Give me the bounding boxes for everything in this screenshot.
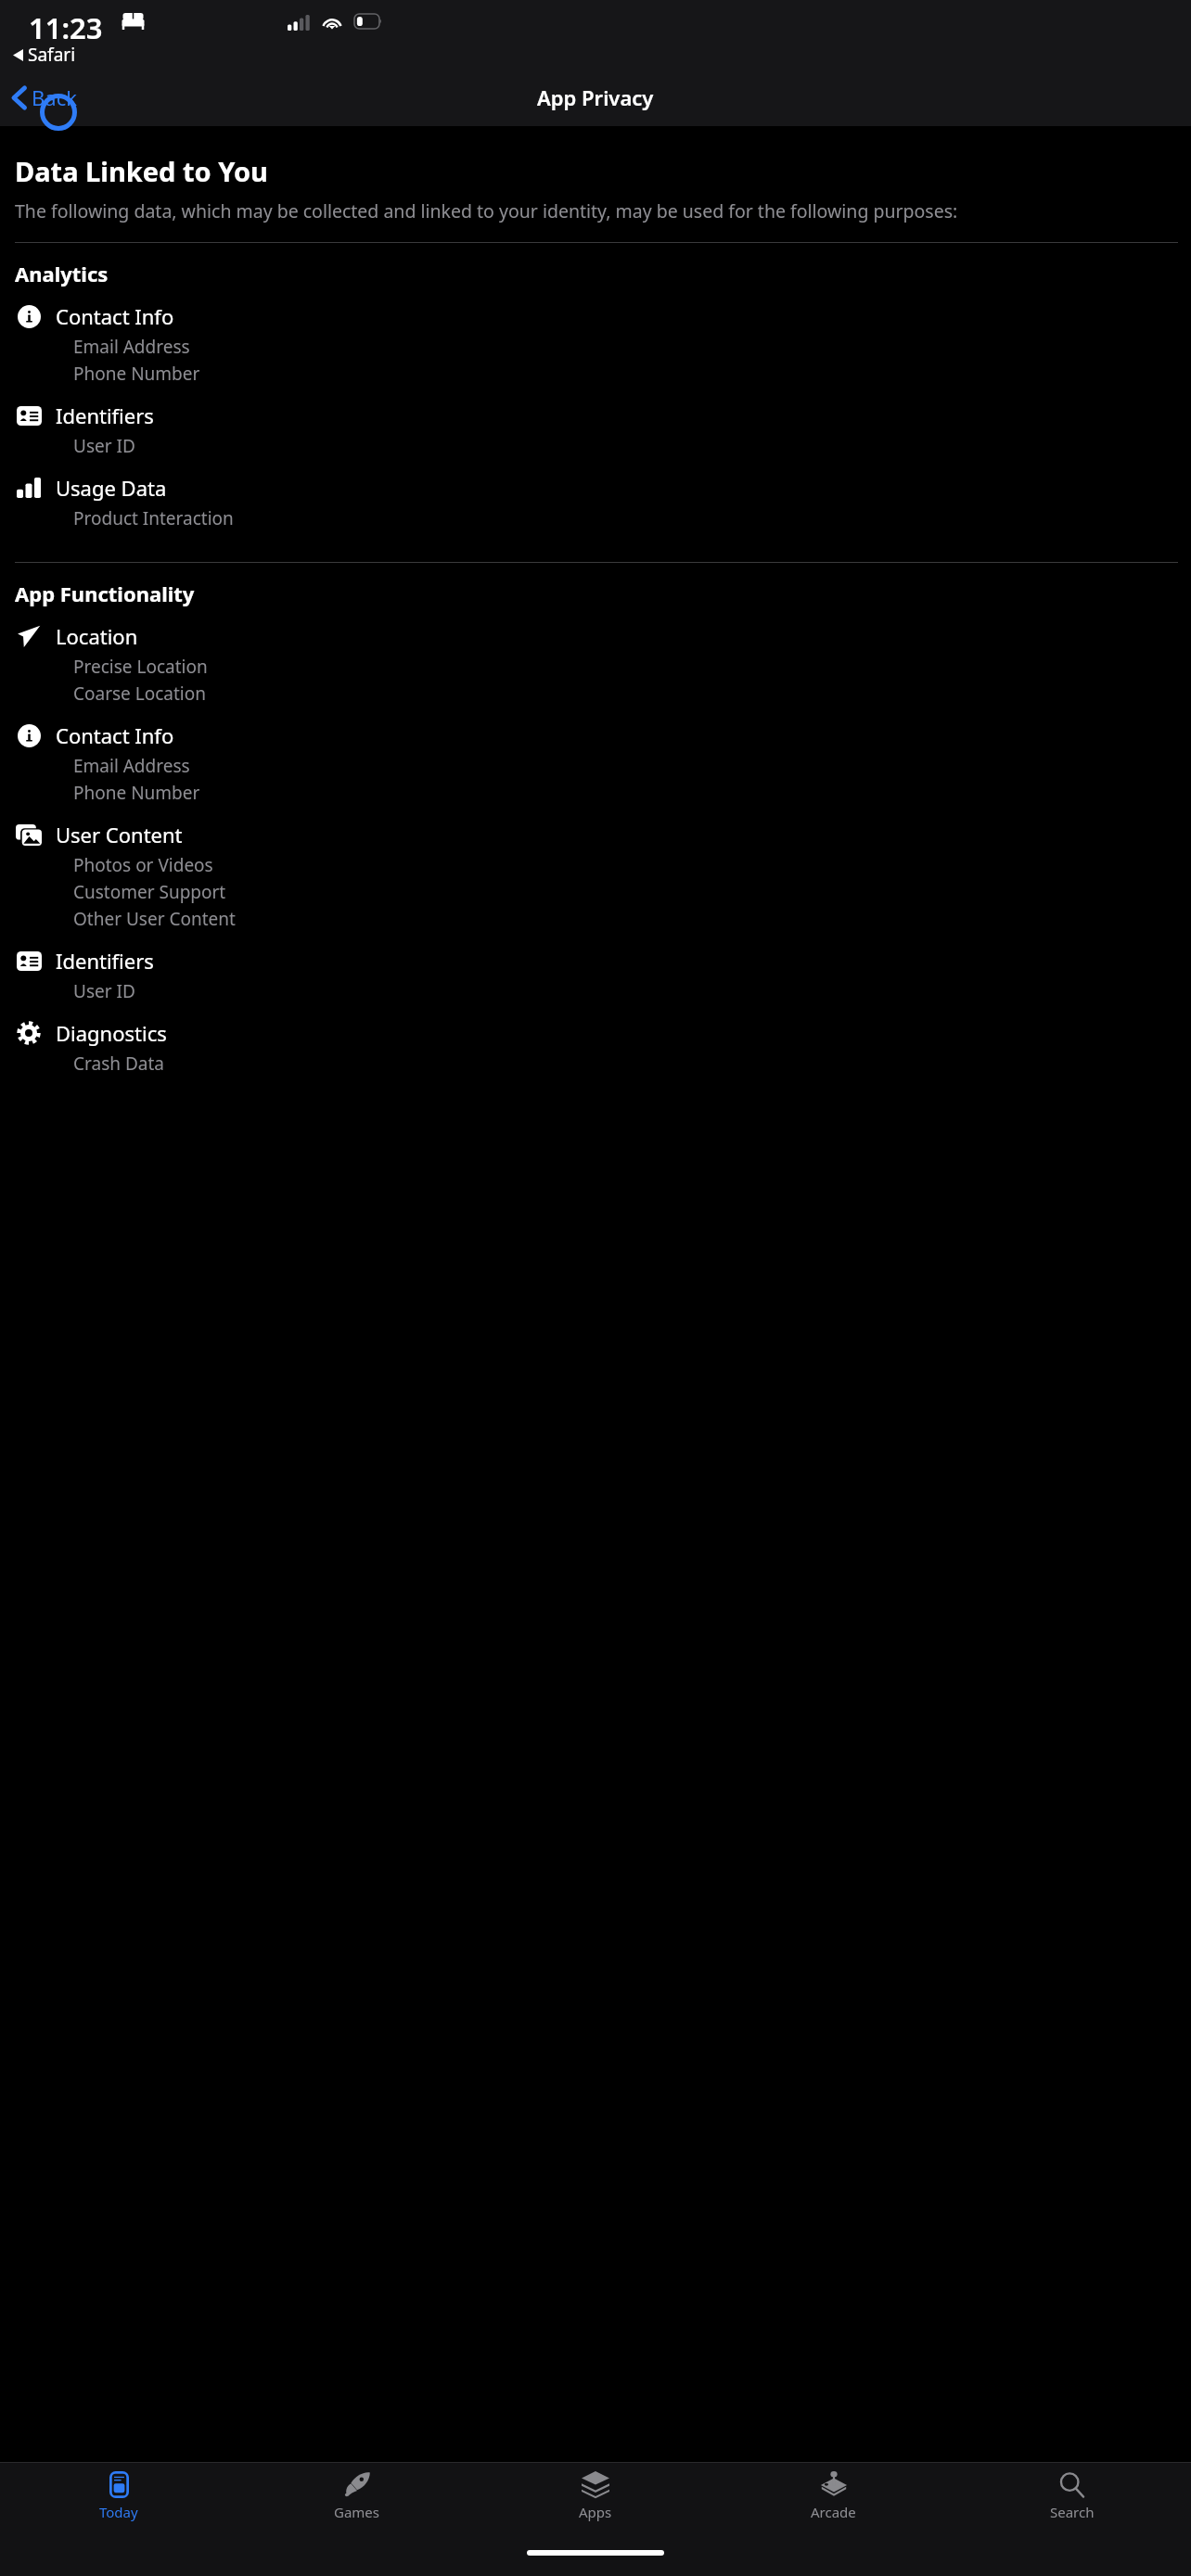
button[interactable]: Today bbox=[0, 2463, 237, 2521]
button[interactable]: User Content bbox=[0, 821, 1191, 947]
staticText: Arcade bbox=[811, 2503, 856, 2521]
button[interactable]: Usage Data bbox=[0, 474, 1191, 546]
button[interactable]: Contact Info bbox=[0, 721, 1191, 821]
button[interactable]: Identifiers bbox=[0, 947, 1191, 1019]
staticText: Back bbox=[32, 83, 77, 111]
staticText: User ID bbox=[73, 979, 135, 1003]
staticText: Crash Data bbox=[73, 1052, 164, 1076]
staticText: Games bbox=[334, 2503, 380, 2521]
button[interactable]: Safari bbox=[13, 43, 76, 67]
staticText: Product Interaction bbox=[73, 506, 234, 530]
staticText: Phone Number bbox=[73, 781, 200, 805]
staticText: Photos or Videos bbox=[73, 853, 213, 877]
staticText: Identifiers bbox=[56, 947, 154, 975]
staticText: Apps bbox=[579, 2503, 612, 2521]
staticText: Usage Data bbox=[56, 474, 167, 502]
button[interactable]: Contact Info bbox=[0, 302, 1191, 402]
staticText: User ID bbox=[73, 434, 135, 458]
staticText: Contact Info bbox=[56, 721, 174, 749]
button[interactable]: Arcade bbox=[714, 2463, 953, 2521]
staticText: App Privacy bbox=[537, 83, 654, 111]
staticText: Phone Number bbox=[73, 362, 200, 386]
staticText: Customer Support bbox=[73, 880, 226, 904]
staticText: Today bbox=[99, 2503, 138, 2521]
staticText: The following data, which may be collect… bbox=[15, 198, 958, 223]
button[interactable]: Location bbox=[0, 622, 1191, 721]
staticText: Precise Location bbox=[73, 655, 208, 679]
staticText: Email Address bbox=[73, 335, 190, 359]
staticText: Other User Content bbox=[73, 907, 236, 931]
staticText: 11:23 bbox=[29, 8, 103, 47]
button[interactable]: Apps bbox=[476, 2463, 714, 2521]
button[interactable]: Search bbox=[953, 2463, 1191, 2521]
staticText: Diagnostics bbox=[56, 1019, 167, 1047]
staticText: Data Linked to You bbox=[15, 153, 268, 189]
staticText: Location bbox=[56, 622, 138, 650]
staticText: Coarse Location bbox=[73, 682, 206, 706]
button[interactable]: Identifiers bbox=[0, 402, 1191, 474]
staticText: Contact Info bbox=[56, 302, 174, 330]
staticText: App Functionality bbox=[15, 580, 195, 607]
staticText: Search bbox=[1050, 2503, 1095, 2521]
button[interactable]: Diagnostics bbox=[0, 1019, 1191, 1091]
staticText: Analytics bbox=[15, 260, 109, 287]
staticText: User Content bbox=[56, 821, 183, 848]
staticText: Identifiers bbox=[56, 402, 154, 429]
button[interactable]: Back bbox=[11, 83, 77, 111]
staticText: Safari bbox=[28, 43, 76, 67]
button[interactable]: Games bbox=[237, 2463, 476, 2521]
staticText: Email Address bbox=[73, 754, 190, 778]
